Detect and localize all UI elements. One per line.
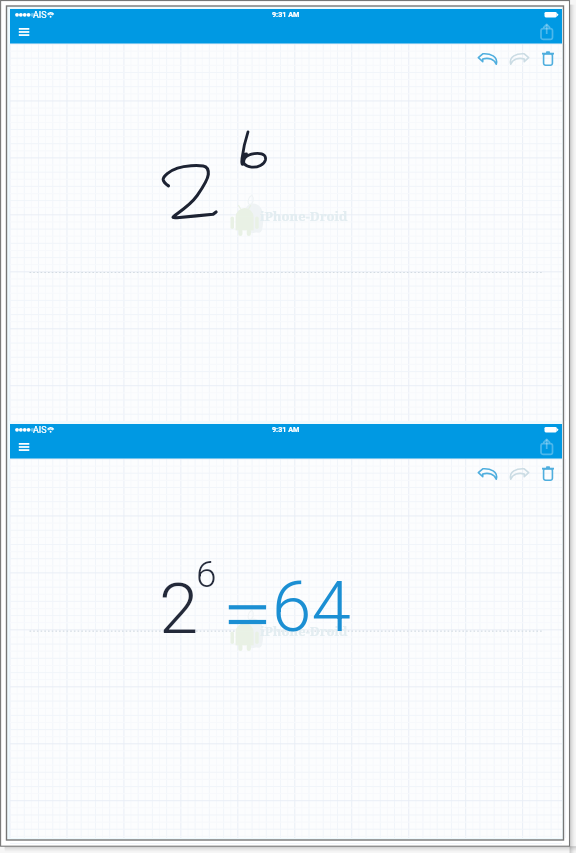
- staticText: 9:31 AM: [272, 425, 300, 433]
- staticText: 6: [196, 553, 217, 596]
- button[interactable]: Menu: [15, 440, 33, 454]
- button[interactable]: Share: [539, 23, 557, 42]
- button[interactable]: Delete: [535, 46, 561, 72]
- button[interactable]: Menu: [15, 25, 33, 39]
- staticText: iPhone-Droid: [260, 207, 348, 225]
- button[interactable]: Redo: [505, 461, 531, 487]
- staticText: AIS: [33, 10, 47, 21]
- button[interactable]: Undo: [476, 46, 502, 72]
- button[interactable]: Delete: [535, 461, 561, 487]
- staticText: 9:31 AM: [272, 10, 300, 18]
- button[interactable]: Undo: [476, 461, 502, 487]
- button[interactable]: Share: [539, 438, 557, 457]
- staticText: iPhone-Droid: [260, 622, 348, 640]
- button[interactable]: Redo: [505, 46, 531, 72]
- staticText: AIS: [33, 425, 47, 436]
- staticText: 64: [272, 565, 351, 648]
- staticText: 2: [159, 567, 199, 650]
